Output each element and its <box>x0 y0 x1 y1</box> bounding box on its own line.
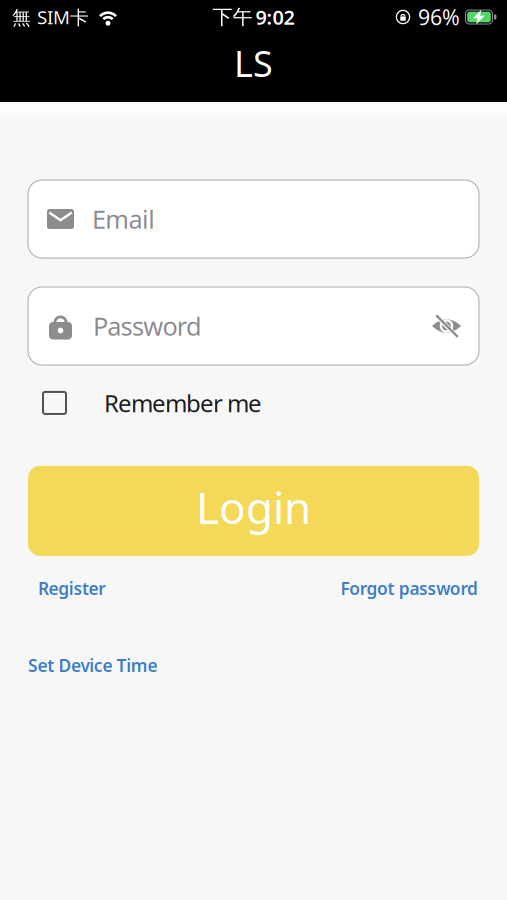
button[interactable]: Forgot password <box>341 577 478 600</box>
staticText: LS <box>234 39 273 87</box>
button[interactable]: Show password <box>432 314 461 337</box>
staticText: 下午 <box>212 5 252 29</box>
staticText: 96% <box>418 3 460 31</box>
staticText: 9:02 <box>255 4 294 30</box>
staticText: Register <box>38 577 106 600</box>
staticText: Password <box>93 309 202 343</box>
button[interactable]: Remember me <box>28 387 479 419</box>
staticText: Login <box>196 478 311 536</box>
button[interactable]: Register <box>38 577 106 600</box>
staticText: Email <box>92 202 155 236</box>
staticText: Forgot password <box>341 577 478 600</box>
button[interactable]: Set Device Time <box>28 654 157 677</box>
staticText: 無 SIM卡 <box>12 5 89 29</box>
staticText: Set Device Time <box>28 654 157 677</box>
button[interactable]: Email <box>28 180 479 258</box>
button[interactable]: Password <box>28 287 479 365</box>
staticText: Remember me <box>104 387 262 419</box>
button[interactable]: Login <box>28 466 479 556</box>
